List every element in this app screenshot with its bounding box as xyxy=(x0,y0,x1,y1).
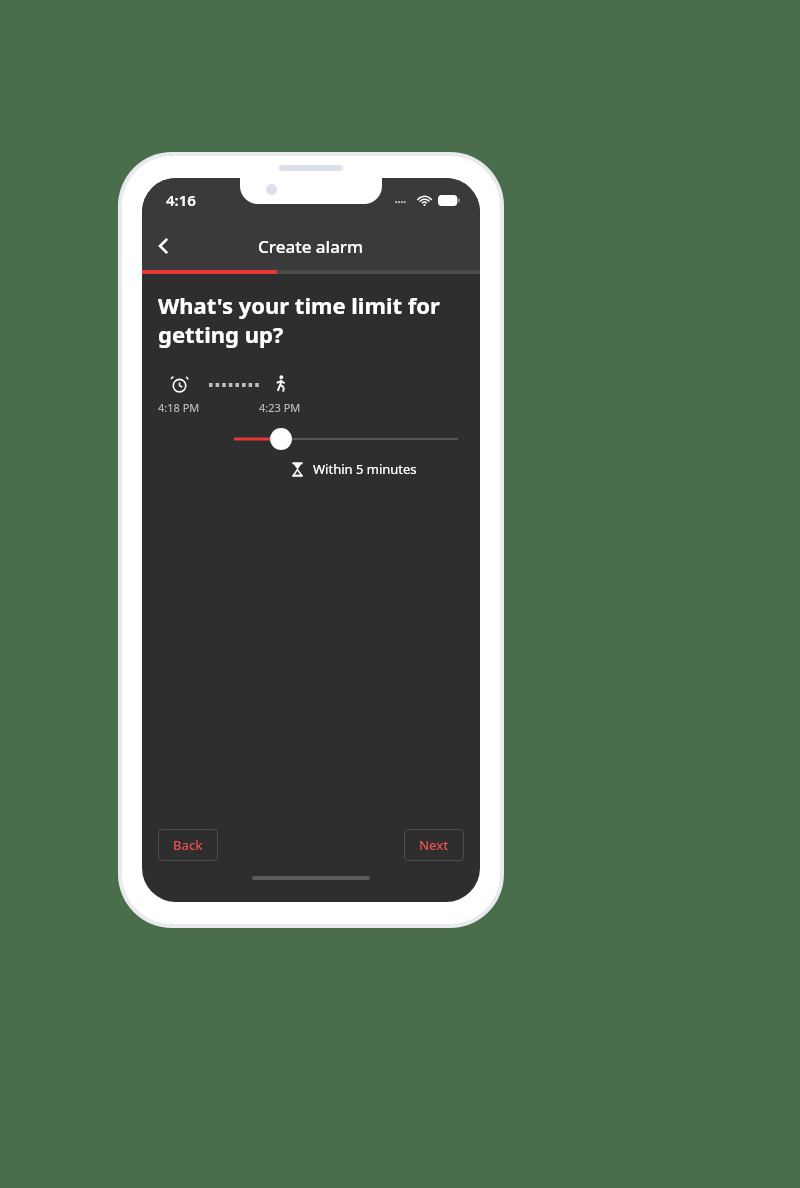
staticText: Within 5 minutes xyxy=(313,460,417,478)
button[interactable]: Next xyxy=(404,829,464,861)
staticText: Next xyxy=(419,836,449,854)
staticText: 4:16 xyxy=(166,190,196,210)
staticText: What's your time limit for getting up? xyxy=(158,290,464,349)
staticText: Back xyxy=(173,836,203,854)
staticText: Create alarm xyxy=(258,235,364,258)
button[interactable]: Back xyxy=(158,829,218,861)
button[interactable]: Time limit slider xyxy=(234,426,458,452)
staticText: 4:18 PM xyxy=(158,400,200,415)
button[interactable]: Back xyxy=(142,224,186,268)
staticText: 4:23 PM xyxy=(259,400,301,415)
